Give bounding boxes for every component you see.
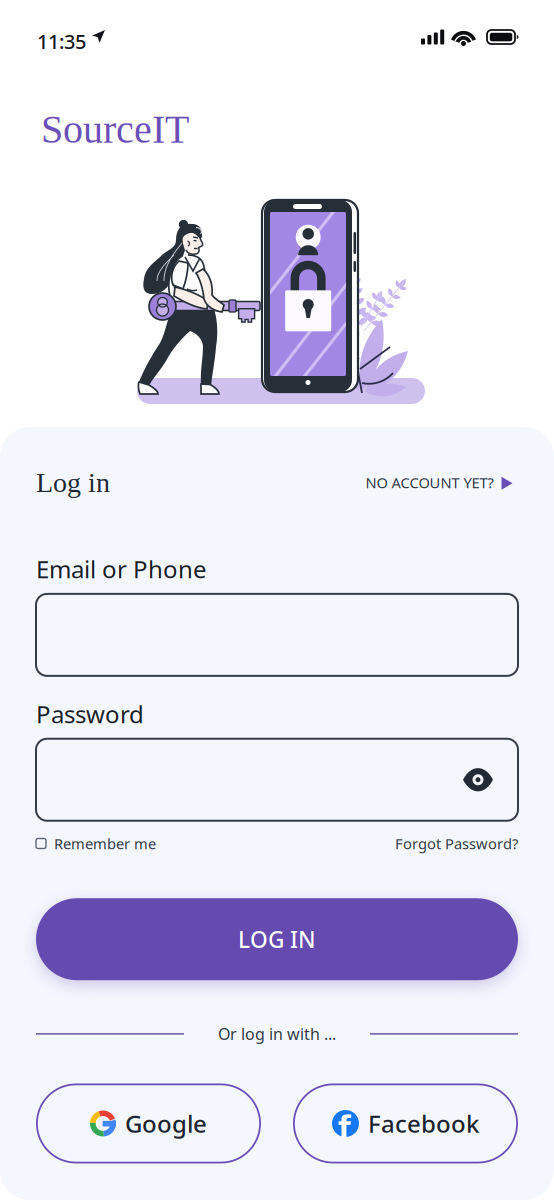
staticText: 11:35 [37,28,86,55]
staticText: LOG IN [238,924,316,954]
staticText: Forgot Password? [395,834,518,853]
button[interactable]: Google [36,1083,261,1163]
button[interactable]: Facebook [293,1083,518,1163]
staticText: Email or Phone [36,553,207,585]
staticText: Google [125,1107,207,1139]
staticText: Or log in with ... [218,1023,336,1044]
staticText: Log in [36,467,110,498]
staticText: Remember me [54,834,156,853]
button[interactable]: LOG IN [36,898,518,980]
button[interactable]: Remember me [36,834,156,853]
button[interactable]: NO ACCOUNT YET? [365,473,518,492]
staticText: Password [36,698,144,730]
staticText: SourceIT [41,107,189,151]
staticText: NO ACCOUNT YET? [365,473,493,492]
button[interactable]: Forgot Password? [395,834,518,853]
staticText: Facebook [368,1107,479,1139]
